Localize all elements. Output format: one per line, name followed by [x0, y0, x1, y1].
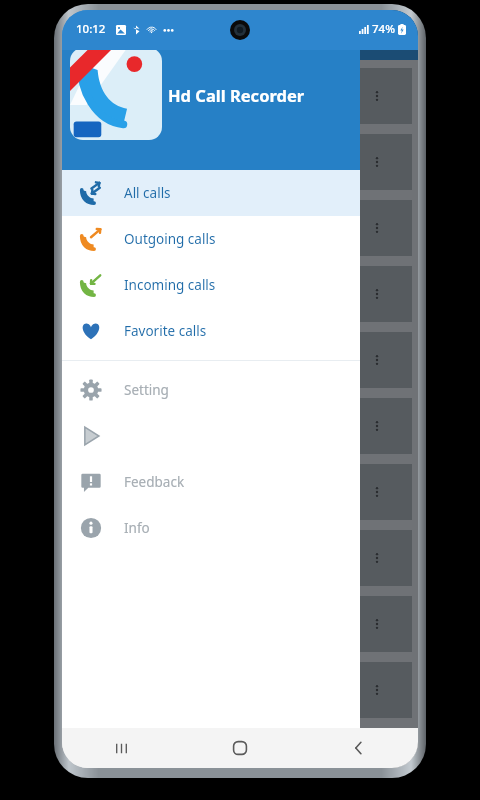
staticText: Favorite calls [124, 322, 207, 340]
button[interactable]: More options [68, 68, 412, 124]
button[interactable]: More options [364, 281, 390, 307]
button[interactable]: More options [68, 332, 412, 388]
button[interactable]: More options [68, 464, 412, 520]
button[interactable]: Search [366, 18, 400, 52]
button[interactable]: More options [364, 83, 390, 109]
staticText: 10:12 [76, 21, 106, 37]
button[interactable]: Setting [62, 367, 360, 413]
button[interactable]: More options [364, 545, 390, 571]
button[interactable]: All calls [62, 170, 360, 216]
button[interactable]: Favorite calls [62, 308, 360, 354]
staticText: Outgoing calls [124, 230, 216, 248]
button[interactable]: More options [68, 596, 412, 652]
button[interactable]: More options [68, 200, 412, 256]
staticText: Setting [124, 381, 169, 399]
staticText: 74% [372, 21, 395, 37]
button[interactable]: More options [68, 134, 412, 190]
button[interactable]: More options [68, 398, 412, 454]
button[interactable]: More options [68, 530, 412, 586]
staticText: Info [124, 519, 150, 537]
button[interactable]: Home [180, 728, 299, 768]
button[interactable]: More options [364, 149, 390, 175]
button[interactable]: More options [364, 611, 390, 637]
button[interactable]: More options [68, 266, 412, 322]
button[interactable]: More options [364, 677, 390, 703]
button[interactable]: Rate on Play Store [62, 413, 360, 459]
staticText: Feedback [124, 473, 185, 491]
button[interactable]: More options [364, 479, 390, 505]
button[interactable]: Feedback [62, 459, 360, 505]
button[interactable]: Outgoing calls [62, 216, 360, 262]
button[interactable]: More options [68, 662, 412, 718]
staticText: Hd Call Recorder [168, 84, 305, 106]
button[interactable]: More options [364, 347, 390, 373]
button[interactable]: Incoming calls [62, 262, 360, 308]
staticText: All calls [124, 184, 171, 202]
button[interactable]: Recent apps [62, 728, 180, 768]
button[interactable]: Info [62, 505, 360, 551]
button[interactable]: More options [364, 215, 390, 241]
staticText: Incoming calls [124, 276, 216, 294]
button[interactable]: More options [364, 413, 390, 439]
button[interactable]: Back [299, 728, 418, 768]
